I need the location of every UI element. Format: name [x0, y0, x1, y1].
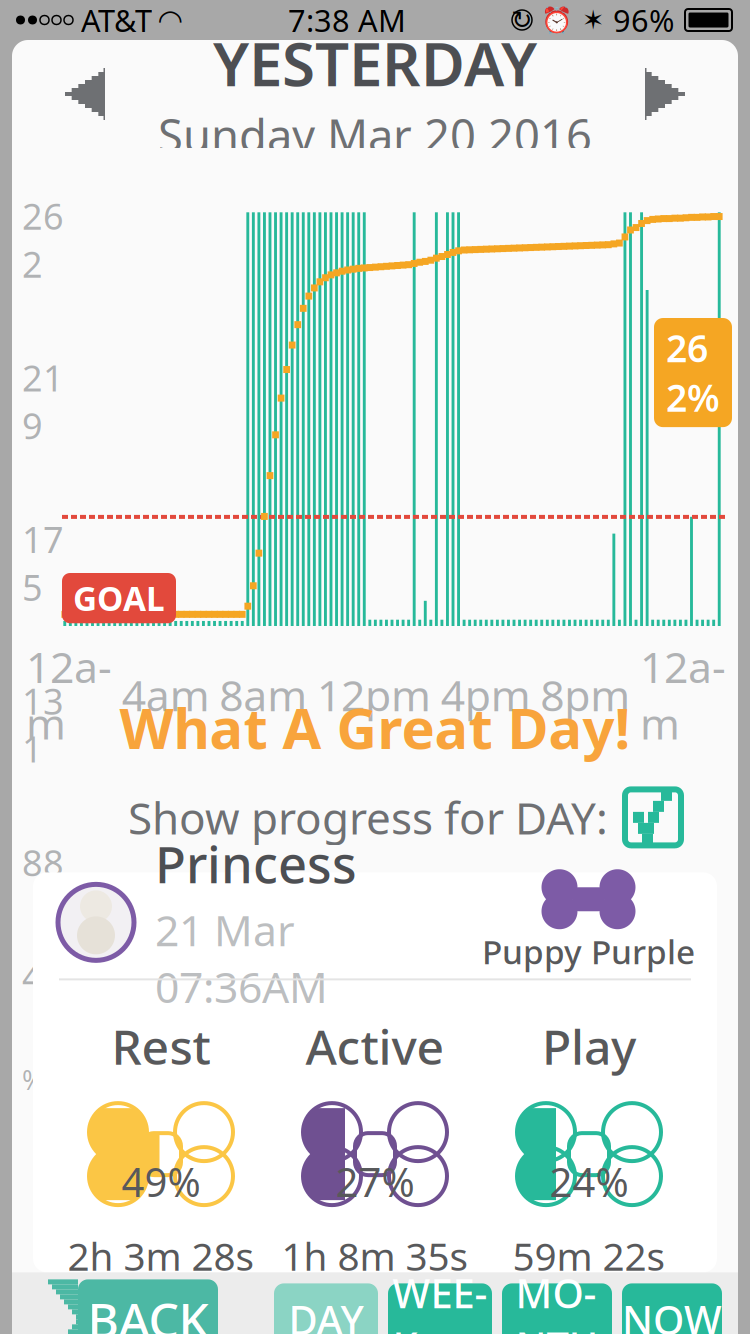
staticText: Active [305, 1014, 444, 1078]
staticText: 21 Mar 07:36AM [155, 901, 328, 1015]
staticText: MONTH [515, 1266, 598, 1334]
staticText: What A Great Day! [119, 690, 630, 764]
staticText: 44 [22, 952, 64, 1000]
staticText: 4pm [441, 666, 531, 723]
staticText: % [22, 1062, 44, 1097]
staticText: 27% [335, 1155, 414, 1208]
button[interactable]: BACK [48, 1279, 218, 1334]
staticText: NOW [622, 1293, 722, 1334]
staticText: 49% [121, 1155, 200, 1208]
button[interactable]: WEEK [388, 1283, 492, 1334]
staticText: 24% [549, 1155, 628, 1208]
staticText: Play [542, 1014, 636, 1078]
button[interactable]: Next day [620, 49, 710, 139]
staticText: 7:38 AM [288, 0, 406, 40]
staticText: DAY [288, 1293, 363, 1334]
staticText: 262 [22, 192, 64, 288]
staticText: AT&T [81, 0, 152, 40]
staticText: 12am [26, 638, 112, 751]
staticText: Show progress for DAY: [128, 788, 608, 847]
button[interactable]: MONTH [502, 1283, 612, 1334]
staticText: 262% [666, 323, 720, 422]
button[interactable]: Previous day [40, 49, 130, 139]
staticText: 2h 3m 28s [67, 1230, 254, 1281]
staticText: 8am [219, 666, 307, 723]
staticText: 219 [22, 354, 64, 449]
staticText: Princess [155, 830, 357, 897]
staticText: 8pm [540, 666, 630, 723]
staticText: 175 [22, 515, 64, 611]
staticText: 12pm [317, 666, 431, 723]
staticText: ⏰ [541, 5, 573, 34]
staticText: WEEK [392, 1266, 487, 1334]
staticText: ✶ [582, 5, 604, 35]
staticText: Sunday Mar 20 2016 [158, 105, 592, 165]
staticText: 131 [22, 677, 64, 772]
button[interactable]: NOW [622, 1283, 722, 1334]
staticText: BACK [87, 1287, 208, 1334]
button[interactable]: DAY [274, 1283, 378, 1334]
staticText: 88 [22, 838, 64, 886]
staticText: Rest [111, 1014, 210, 1078]
staticText: 96% [613, 0, 674, 40]
staticText: ↻ [511, 6, 532, 34]
button[interactable]: Show progress for day [608, 786, 684, 848]
staticText: ◠ [159, 3, 182, 37]
staticText: GOAL [73, 576, 165, 620]
staticText: 12am [640, 638, 726, 751]
staticText: 4am [122, 666, 210, 723]
staticText: Puppy Purple [482, 929, 695, 973]
staticText: 1h 8m 35s [281, 1230, 468, 1281]
staticText: 59m 22s [512, 1230, 665, 1281]
staticText: YESTERDAY [213, 23, 537, 103]
